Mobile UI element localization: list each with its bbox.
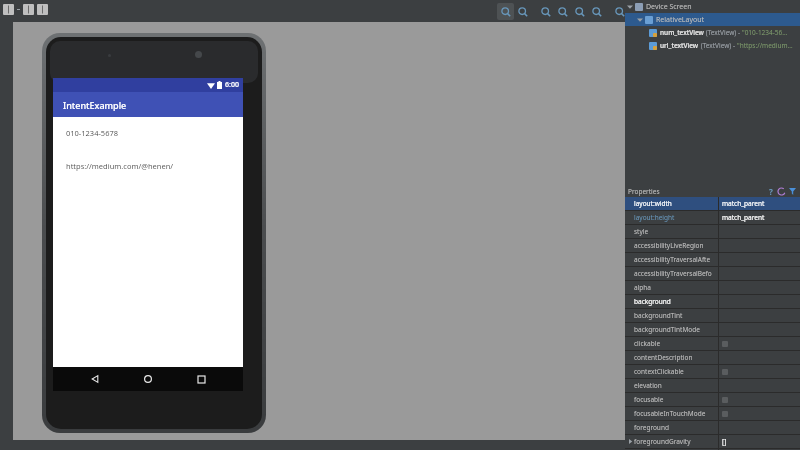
staticText: foreground xyxy=(634,423,669,432)
button[interactable]: Zoom select xyxy=(497,3,514,20)
staticText: https://medium.com/@henen/ xyxy=(66,161,174,171)
button[interactable]: RelativeLayout xyxy=(625,13,800,26)
button[interactable]: Zoom out xyxy=(554,3,571,20)
staticText: accessibilityTraversalBefo xyxy=(634,269,712,278)
button[interactable]: url_textView xyxy=(625,39,800,52)
staticText: (TextView) - xyxy=(699,41,737,50)
button[interactable]: elevation xyxy=(625,379,800,392)
button[interactable]: Blueprint mode xyxy=(23,4,34,15)
staticText: 6:00 xyxy=(225,80,239,90)
staticText: accessibilityTraversalAfte xyxy=(634,255,711,264)
button[interactable]: Zoom to fit xyxy=(571,3,588,20)
button[interactable]: 010-1234-5678 xyxy=(66,128,119,138)
button[interactable]: Refresh xyxy=(588,3,605,20)
staticText: "https://medium… xyxy=(737,41,793,50)
staticText: alpha xyxy=(634,283,651,292)
button[interactable]: contextClickable xyxy=(625,365,800,378)
button[interactable]: accessibilityLiveRegion xyxy=(625,239,800,252)
staticText: [] xyxy=(722,437,727,446)
staticText: ? xyxy=(769,186,773,197)
button[interactable]: style xyxy=(625,225,800,238)
button[interactable]: focusable xyxy=(625,393,800,406)
staticText: backgroundTint xyxy=(634,311,683,320)
button[interactable]: Zoom pan xyxy=(514,3,531,20)
staticText: (TextView) - xyxy=(704,28,742,37)
button[interactable]: Design mode xyxy=(3,4,14,15)
staticText: accessibilityLiveRegion xyxy=(634,241,704,250)
button[interactable]: focusableInTouchMode xyxy=(625,407,800,420)
staticText: background xyxy=(634,297,671,306)
staticText: 010-1234-5678 xyxy=(66,128,119,138)
staticText: contentDescription xyxy=(634,353,693,362)
staticText: focusable xyxy=(634,395,664,404)
button[interactable]: Device Screen xyxy=(625,0,800,13)
button[interactable]: backgroundTint xyxy=(625,309,800,322)
staticText: elevation xyxy=(634,381,662,390)
staticText: num_textView xyxy=(660,28,704,37)
button[interactable]: foregroundGravity xyxy=(625,435,800,448)
staticText: layout:height xyxy=(634,213,675,222)
button[interactable]: backgroundTintMode xyxy=(625,323,800,336)
button[interactable]: Recents xyxy=(190,368,212,390)
staticText: "010-1234-56… xyxy=(742,28,788,37)
staticText: match_parent xyxy=(722,199,765,208)
staticText: backgroundTintMode xyxy=(634,325,700,334)
button[interactable]: Home xyxy=(137,368,159,390)
button[interactable]: Reset xyxy=(776,186,787,197)
staticText: foregroundGravity xyxy=(634,437,691,446)
button[interactable]: num_textView xyxy=(625,26,800,39)
button[interactable]: https://medium.com/@henen/ xyxy=(66,161,174,171)
button[interactable]: contentDescription xyxy=(625,351,800,364)
button[interactable]: background xyxy=(625,295,800,308)
staticText: style xyxy=(634,227,649,236)
button[interactable]: Split mode xyxy=(37,4,48,15)
button[interactable]: Settings xyxy=(611,3,628,20)
staticText: layout:width xyxy=(634,199,672,208)
button[interactable]: accessibilityTraversalBefo xyxy=(625,267,800,280)
button[interactable]: Help xyxy=(765,186,776,197)
staticText: focusableInTouchMode xyxy=(634,409,706,418)
button[interactable]: foreground xyxy=(625,421,800,434)
staticText: match_parent xyxy=(722,213,765,222)
button[interactable]: clickable xyxy=(625,337,800,350)
staticText: Properties xyxy=(628,187,660,196)
button[interactable]: alpha xyxy=(625,281,800,294)
staticText: clickable xyxy=(634,339,661,348)
button[interactable]: Filter xyxy=(787,186,798,197)
staticText: Device Screen xyxy=(646,2,692,12)
button[interactable]: layout:height xyxy=(625,211,800,224)
staticText: url_textView xyxy=(660,41,699,50)
button[interactable]: accessibilityTraversalAfte xyxy=(625,253,800,266)
staticText: IntentExample xyxy=(63,99,127,111)
button[interactable]: layout:width xyxy=(625,197,800,210)
staticText: RelativeLayout xyxy=(656,15,705,25)
button[interactable]: Zoom in xyxy=(537,3,554,20)
button[interactable]: Back xyxy=(84,368,106,390)
staticText: contextClickable xyxy=(634,367,684,376)
